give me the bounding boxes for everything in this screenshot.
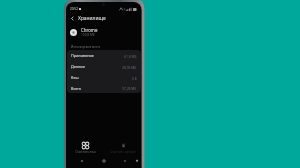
staticText: Приложение — [71, 53, 94, 58]
button[interactable]: Очистить данные — [104, 140, 142, 156]
staticText: 97,28 МБ — [122, 86, 137, 90]
staticText: Chrome — [81, 27, 98, 33]
button[interactable]: Recent apps — [78, 157, 85, 164]
button[interactable]: Приложение — [67, 50, 141, 61]
button[interactable]: Back — [121, 157, 128, 164]
staticText: Очистить данные — [110, 150, 136, 154]
button[interactable]: Кэш — [67, 72, 141, 83]
staticText: Кэш — [71, 75, 79, 80]
staticText: Очистить кэш — [75, 150, 96, 154]
button[interactable]: Данные — [67, 61, 141, 72]
staticText: 61,8 МБ — [124, 54, 137, 58]
staticText: Используемое место — [71, 45, 101, 49]
staticText: Всего — [71, 86, 81, 91]
button[interactable]: Chrome — [66, 25, 142, 39]
staticText: 0 Б — [132, 76, 137, 80]
staticText: Данные — [71, 64, 86, 69]
staticText: 38,95 МБ — [122, 65, 137, 69]
staticText: Хранилище — [78, 15, 106, 22]
button[interactable]: Очистить кэш — [66, 140, 104, 156]
staticText: 20:52 — [70, 7, 78, 11]
button[interactable]: Home — [100, 157, 107, 164]
button[interactable]: Всего — [67, 83, 141, 93]
button[interactable]: Hide keyboard — [133, 157, 140, 164]
staticText: 100,8 МБ — [81, 33, 95, 37]
button[interactable]: Back — [68, 14, 77, 23]
